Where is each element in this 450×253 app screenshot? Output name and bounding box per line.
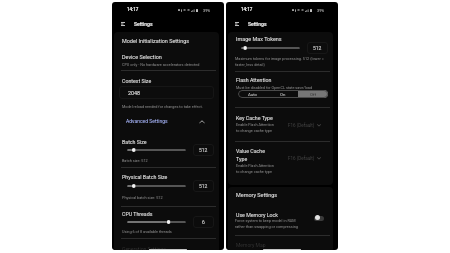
staticText: 6 (202, 219, 205, 225)
staticText: 14:17 (241, 7, 253, 12)
staticText: 39% (203, 8, 211, 13)
staticText: 14:17 (127, 7, 139, 12)
staticText: 512 (199, 147, 208, 153)
staticText: Using 6 of 8 available threads (122, 229, 172, 233)
button[interactable]: 512 (193, 144, 214, 156)
staticText: Batch size: 512 (122, 158, 148, 162)
staticText: Device Selection (122, 54, 162, 60)
button[interactable]: F16 (Default) (288, 154, 321, 162)
staticText: F16 (Default) (288, 156, 315, 161)
button[interactable]: 6 (193, 216, 214, 228)
staticText: 512 (199, 183, 208, 189)
staticText: Physical batch size: 512 (122, 195, 163, 199)
staticText: 39% (317, 8, 325, 13)
staticText: Image Max Tokens (236, 36, 282, 42)
staticText: Advanced Settings (126, 118, 168, 124)
staticText: Key Cache Type (236, 115, 273, 121)
staticText: Enable Flash Attention to change cache t… (236, 122, 277, 133)
staticText: F16 (Default) (288, 123, 315, 128)
staticText: 2048 (128, 90, 141, 96)
staticText: Physical Batch Size (122, 174, 168, 180)
staticText: Model reload needed for changes to take … (122, 104, 203, 108)
staticText: Flash Attention (236, 77, 272, 83)
staticText: Context Size (122, 78, 152, 84)
staticText: Model Initialization Settings (122, 38, 190, 44)
staticText: Auto (248, 92, 258, 97)
staticText: 512 (313, 45, 322, 51)
button[interactable]: 512 (307, 42, 328, 54)
staticText: CPU only - No hardware accelerators dete… (122, 62, 200, 66)
staticText: Batch Size (122, 139, 147, 145)
staticText: Settings (134, 21, 153, 27)
staticText: Force system to keep model in RAM rather… (235, 218, 305, 229)
button[interactable]: Slider (127, 146, 186, 154)
button[interactable]: On (268, 90, 298, 98)
button[interactable]: 512 (193, 180, 214, 192)
staticText: Memory Settings (236, 192, 278, 198)
button[interactable]: Off (298, 90, 328, 98)
button[interactable]: Menu (118, 19, 128, 29)
staticText: On (280, 92, 286, 97)
button[interactable]: F16 (Default) (288, 121, 321, 129)
staticText: Use Memory Lock (236, 212, 279, 218)
staticText: Value Cache Type (236, 148, 268, 163)
staticText: Must be disabled for OpenCL state save/l… (236, 85, 313, 89)
button[interactable]: 2048 (119, 86, 214, 99)
button[interactable]: Menu (232, 19, 242, 29)
staticText: Maximum tokens for image processing. 512… (235, 56, 328, 67)
staticText: Off (310, 92, 317, 97)
button[interactable]: Slider (127, 182, 186, 190)
staticText: Enable Flash Attention to change cache t… (236, 163, 277, 174)
button[interactable]: Slider (241, 44, 300, 52)
button[interactable]: Slider (127, 218, 186, 226)
staticText: CPU Threads (122, 211, 153, 217)
button[interactable]: Auto (238, 90, 268, 98)
staticText: Settings (248, 21, 267, 27)
staticText: Memory Map (236, 242, 266, 248)
button[interactable]: Advanced Settings (119, 114, 211, 128)
staticText: Generation Settings (122, 246, 166, 250)
button[interactable]: Use Memory Lock toggle (314, 216, 324, 221)
